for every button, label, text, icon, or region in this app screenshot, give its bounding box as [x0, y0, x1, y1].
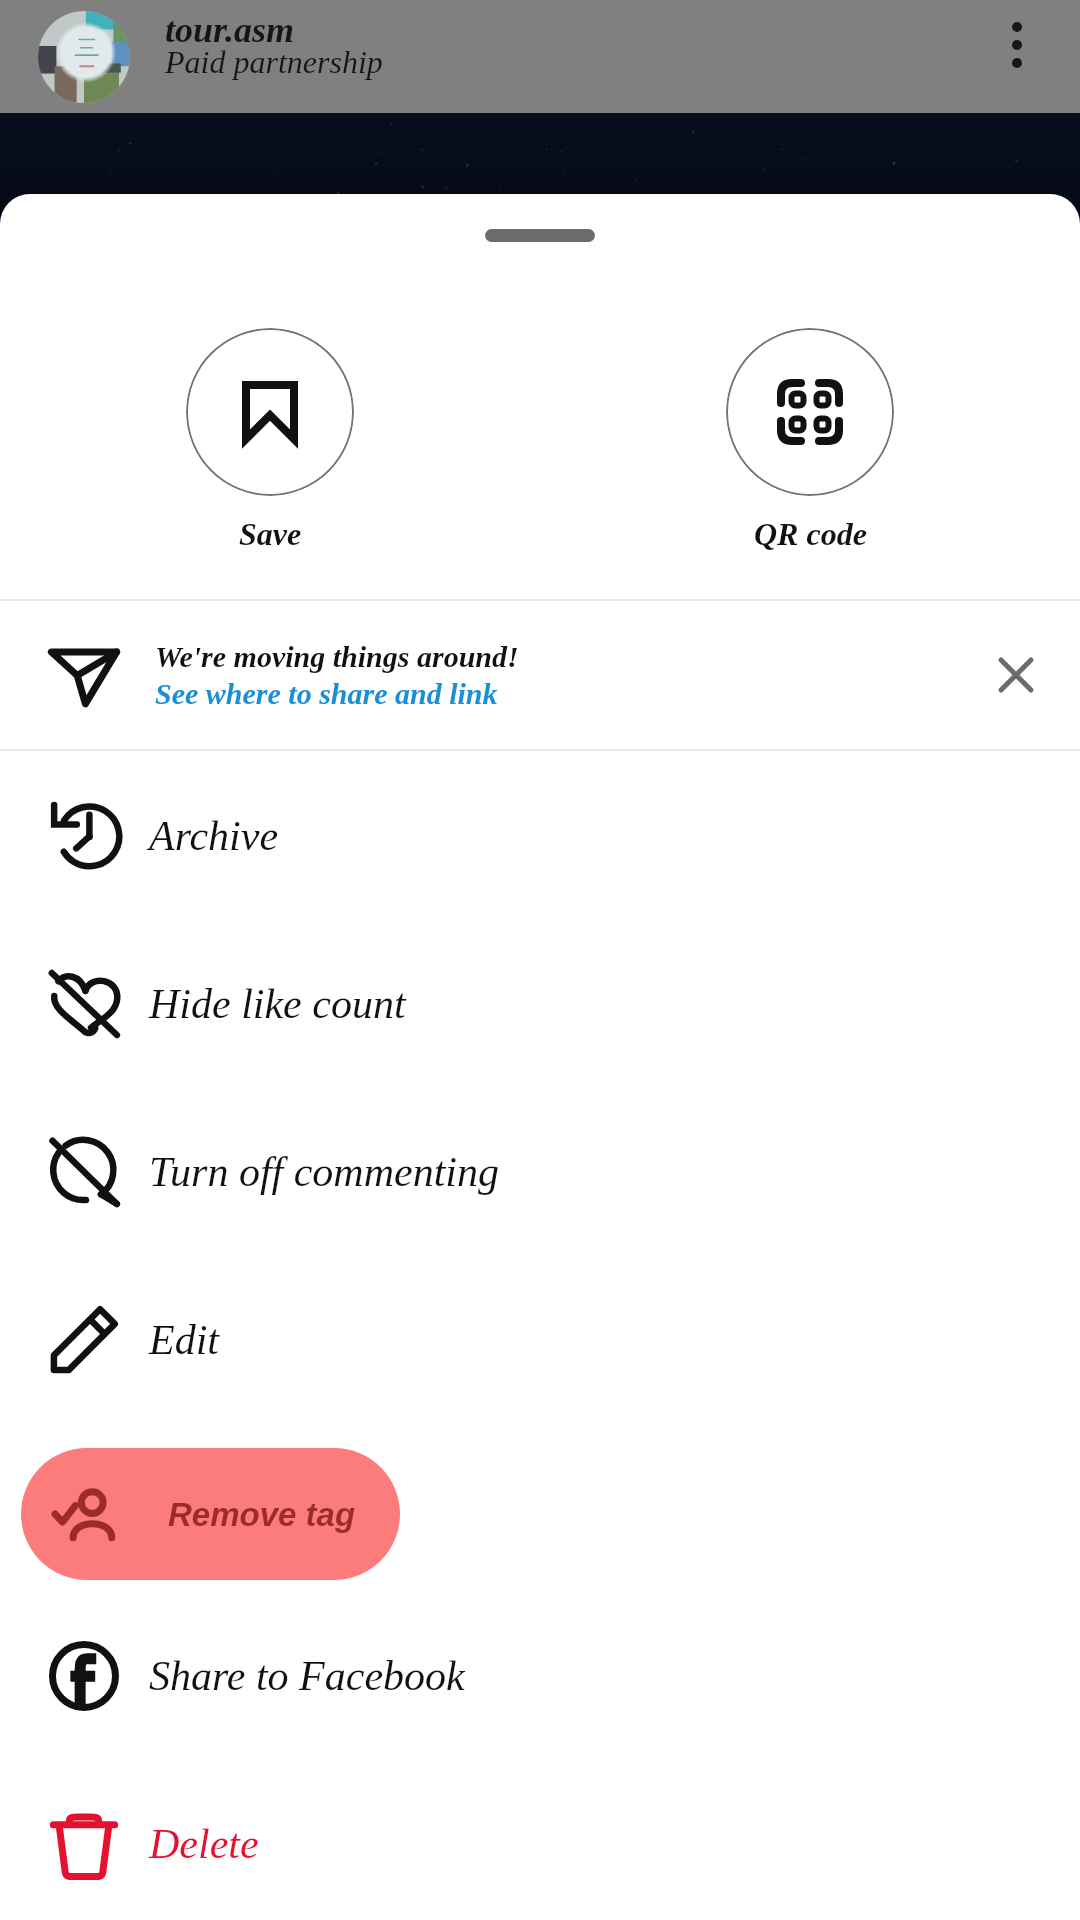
button[interactable]: Edit — [0, 1256, 1080, 1424]
staticText: Delete — [149, 1821, 259, 1868]
button[interactable]: Hide like count — [0, 920, 1080, 1088]
staticText: Hide like count — [149, 981, 406, 1028]
button[interactable]: tour.asm — [165, 10, 383, 85]
button[interactable]: More options — [984, 12, 1050, 78]
staticText: Save — [239, 516, 302, 551]
button[interactable]: Remove tag — [21, 1448, 400, 1580]
staticText: Paid partnership — [165, 44, 383, 79]
button[interactable]: tour.asm profile picture — [38, 11, 130, 103]
button[interactable]: Dismiss — [950, 601, 1080, 749]
staticText: Turn off commenting — [149, 1149, 500, 1196]
staticText: We're moving things around! — [155, 640, 519, 673]
staticText: QR code — [754, 516, 867, 551]
staticText: tour.asm — [165, 10, 295, 50]
button[interactable]: We're moving things around! — [0, 601, 1080, 749]
staticText: Share to Facebook — [149, 1653, 465, 1700]
button[interactable]: Delete — [0, 1760, 1080, 1920]
staticText: See where to share and link — [155, 677, 498, 710]
button[interactable]: Archive — [0, 752, 1080, 920]
button[interactable]: QR code — [726, 328, 894, 551]
button[interactable]: Save — [186, 328, 354, 551]
staticText: Archive — [149, 813, 279, 860]
button[interactable]: Share to Facebook — [0, 1592, 1080, 1760]
button[interactable]: Turn off commenting — [0, 1088, 1080, 1256]
button[interactable]: Drag handle — [485, 229, 595, 242]
staticText: Remove tag — [168, 1496, 356, 1533]
staticText: Edit — [149, 1317, 219, 1364]
